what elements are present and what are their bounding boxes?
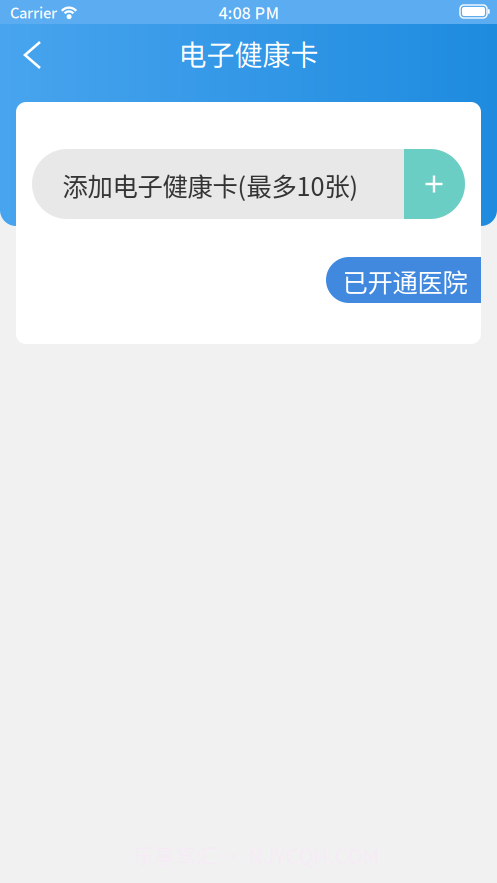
staticText: 电子健康卡 xyxy=(178,33,318,74)
button[interactable]: Back xyxy=(6,24,62,86)
staticText: 添加电子健康卡(最多10张) xyxy=(62,167,358,203)
button[interactable]: 添加电子健康卡(最多10张) xyxy=(32,149,465,219)
staticText: Carrier xyxy=(10,1,57,23)
staticText: 已开通医院 xyxy=(342,263,467,299)
staticText: 4:08 PM xyxy=(218,0,279,24)
button[interactable]: 已开通医院 xyxy=(326,257,497,303)
